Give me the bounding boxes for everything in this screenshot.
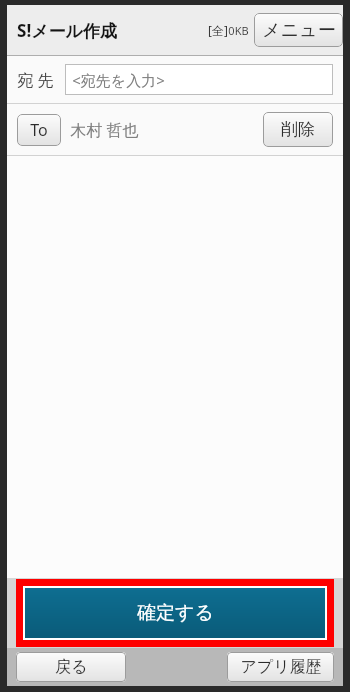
- button[interactable]: 確定する: [25, 588, 325, 638]
- staticText: [全]: [208, 22, 228, 38]
- button[interactable]: <宛先を入力>: [65, 64, 333, 95]
- staticText: S!メール作成: [17, 19, 117, 42]
- staticText: 0KB: [228, 23, 249, 38]
- staticText: アプリ履歴: [240, 657, 322, 677]
- staticText: 宛 先: [17, 69, 54, 91]
- button[interactable]: メニュー: [254, 13, 343, 47]
- staticText: 削除: [281, 119, 315, 140]
- staticText: 確定する: [137, 601, 214, 625]
- staticText: <宛先を入力>: [72, 70, 165, 90]
- button[interactable]: To: [17, 114, 61, 146]
- staticText: 戻る: [55, 657, 88, 677]
- staticText: 木村 哲也: [70, 119, 139, 141]
- staticText: メニュー: [262, 19, 336, 42]
- staticText: To: [30, 119, 48, 141]
- button[interactable]: 削除: [263, 112, 333, 147]
- button[interactable]: 戻る: [16, 652, 126, 682]
- button[interactable]: アプリ履歴: [227, 652, 334, 682]
